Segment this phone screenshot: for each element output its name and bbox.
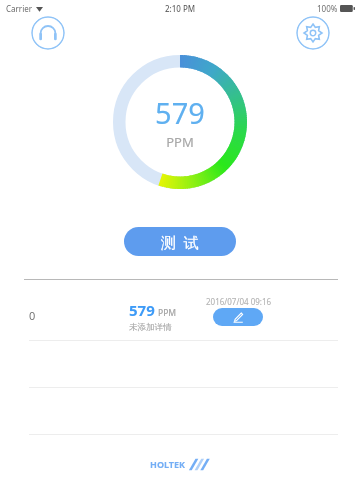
staticText: 2:10 PM: [165, 3, 196, 14]
staticText: 579: [155, 93, 205, 132]
staticText: 579: [129, 300, 155, 320]
staticText: PPM: [158, 307, 177, 319]
staticText: 2016/07/04 09:16: [206, 296, 272, 307]
button[interactable]: Settings: [296, 16, 330, 50]
staticText: HOLTEK: [150, 458, 186, 470]
staticText: 0: [29, 308, 36, 323]
button[interactable]: Edit: [213, 308, 263, 326]
staticText: PPM: [166, 133, 194, 151]
staticText: Carrier: [6, 3, 33, 14]
staticText: 100%: [317, 3, 338, 14]
button[interactable]: 0: [0, 280, 360, 340]
button[interactable]: 测 试: [124, 227, 236, 256]
button[interactable]: Headset: [31, 16, 65, 50]
staticText: 测 试: [161, 232, 199, 252]
staticText: 未添加详情: [129, 322, 172, 333]
